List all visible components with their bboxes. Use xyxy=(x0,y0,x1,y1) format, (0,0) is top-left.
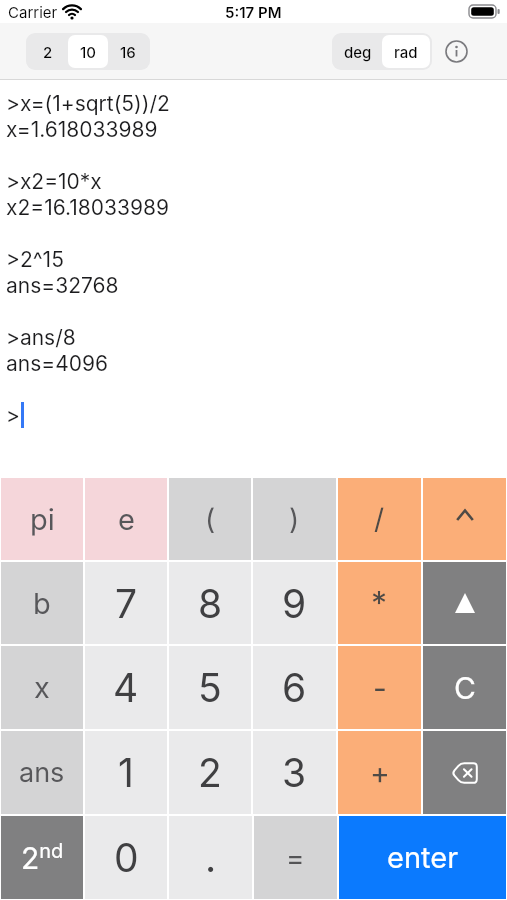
button[interactable]: deg xyxy=(334,35,382,68)
button[interactable]: 2 xyxy=(28,35,68,68)
staticText: ) xyxy=(289,502,300,536)
staticText: >x2=10*x xyxy=(6,169,102,194)
button[interactable]: 7 xyxy=(85,562,167,644)
button[interactable] xyxy=(423,562,506,644)
staticText: = xyxy=(286,841,305,875)
staticText: ans=4096 xyxy=(6,351,109,376)
staticText: >x=(1+sqrt(5))/2 xyxy=(6,91,170,116)
button[interactable]: 1 xyxy=(85,731,167,814)
staticText: e xyxy=(118,502,135,537)
button[interactable]: e xyxy=(85,478,167,560)
button[interactable] xyxy=(423,478,506,560)
staticText: 8 xyxy=(198,580,223,627)
button[interactable]: / xyxy=(338,478,421,560)
button[interactable]: rad xyxy=(382,35,430,68)
staticText: 7 xyxy=(115,580,138,627)
staticText: 9 xyxy=(282,580,307,627)
button[interactable]: pi xyxy=(1,478,83,560)
staticText: enter xyxy=(387,840,459,875)
button[interactable]: 0 xyxy=(85,816,167,899)
button[interactable]: 2 xyxy=(169,731,251,814)
staticText: 6 xyxy=(282,664,307,711)
staticText: 0 xyxy=(114,834,139,881)
staticText: >ans/8 xyxy=(6,325,76,350)
staticText: > xyxy=(6,403,20,428)
staticText: pi xyxy=(30,502,55,537)
staticText: ( xyxy=(205,502,216,536)
staticText: C xyxy=(454,670,476,706)
staticText: ans=32768 xyxy=(6,273,119,298)
staticText: rad xyxy=(394,43,418,61)
button[interactable]: + xyxy=(338,731,421,814)
staticText: 2 xyxy=(198,749,222,796)
button[interactable]: - xyxy=(338,646,421,729)
button[interactable]: ans xyxy=(1,731,83,814)
button[interactable]: ( xyxy=(169,478,251,560)
staticText: + xyxy=(370,755,390,791)
staticText: 5:17 PM xyxy=(225,3,282,21)
button[interactable]: . xyxy=(169,816,252,899)
staticText: . xyxy=(205,834,217,881)
staticText: 2 xyxy=(43,43,53,61)
staticText: 2nd xyxy=(21,839,64,876)
staticText: 3 xyxy=(282,749,307,796)
button[interactable]: C xyxy=(423,646,506,729)
staticText: b xyxy=(33,586,51,621)
button[interactable]: 4 xyxy=(85,646,167,729)
staticText: 5 xyxy=(198,664,222,711)
staticText: 10 xyxy=(80,43,96,61)
button[interactable]: 8 xyxy=(169,562,251,644)
button[interactable]: enter xyxy=(339,816,506,899)
button[interactable]: 6 xyxy=(253,646,336,729)
button[interactable]: 2nd xyxy=(1,816,83,899)
button[interactable]: = xyxy=(254,816,337,899)
staticText: * xyxy=(371,584,388,623)
staticText: deg xyxy=(344,43,372,61)
button[interactable]: ) xyxy=(253,478,336,560)
button[interactable]: 10 xyxy=(68,35,108,68)
button[interactable]: 16 xyxy=(108,35,148,68)
staticText: Carrier xyxy=(8,3,58,21)
button[interactable] xyxy=(445,40,468,63)
staticText: x2=16.18033989 xyxy=(6,195,170,220)
button[interactable]: 5 xyxy=(169,646,251,729)
staticText: 1 xyxy=(118,749,134,796)
staticText: 4 xyxy=(113,664,139,711)
button[interactable]: 3 xyxy=(253,731,336,814)
staticText: 16 xyxy=(120,43,136,61)
button[interactable]: x xyxy=(1,646,83,729)
staticText: ans xyxy=(19,756,65,789)
staticText: >2^15 xyxy=(6,247,64,272)
staticText: x xyxy=(34,670,50,705)
button[interactable]: b xyxy=(1,562,83,644)
button[interactable] xyxy=(423,731,506,814)
staticText: - xyxy=(373,670,387,706)
button[interactable]: * xyxy=(338,562,421,644)
button[interactable]: 9 xyxy=(253,562,336,644)
staticText: x=1.618033989 xyxy=(6,117,158,142)
staticText: / xyxy=(374,502,385,536)
